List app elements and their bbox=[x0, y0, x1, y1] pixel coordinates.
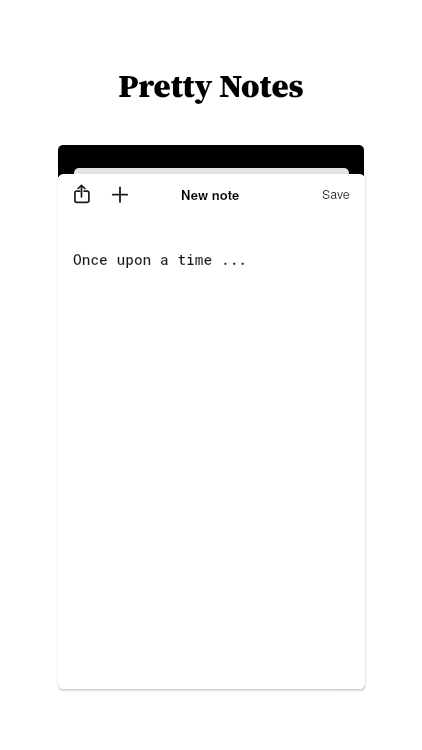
button[interactable]: Add note bbox=[106, 181, 134, 209]
staticText: Once upon a time ... bbox=[73, 250, 248, 269]
button[interactable]: Share bbox=[68, 181, 96, 209]
staticText: Pretty Notes bbox=[0, 63, 422, 108]
staticText: Save bbox=[322, 185, 350, 203]
button[interactable]: Save bbox=[314, 180, 358, 208]
staticText: New note bbox=[181, 185, 240, 204]
